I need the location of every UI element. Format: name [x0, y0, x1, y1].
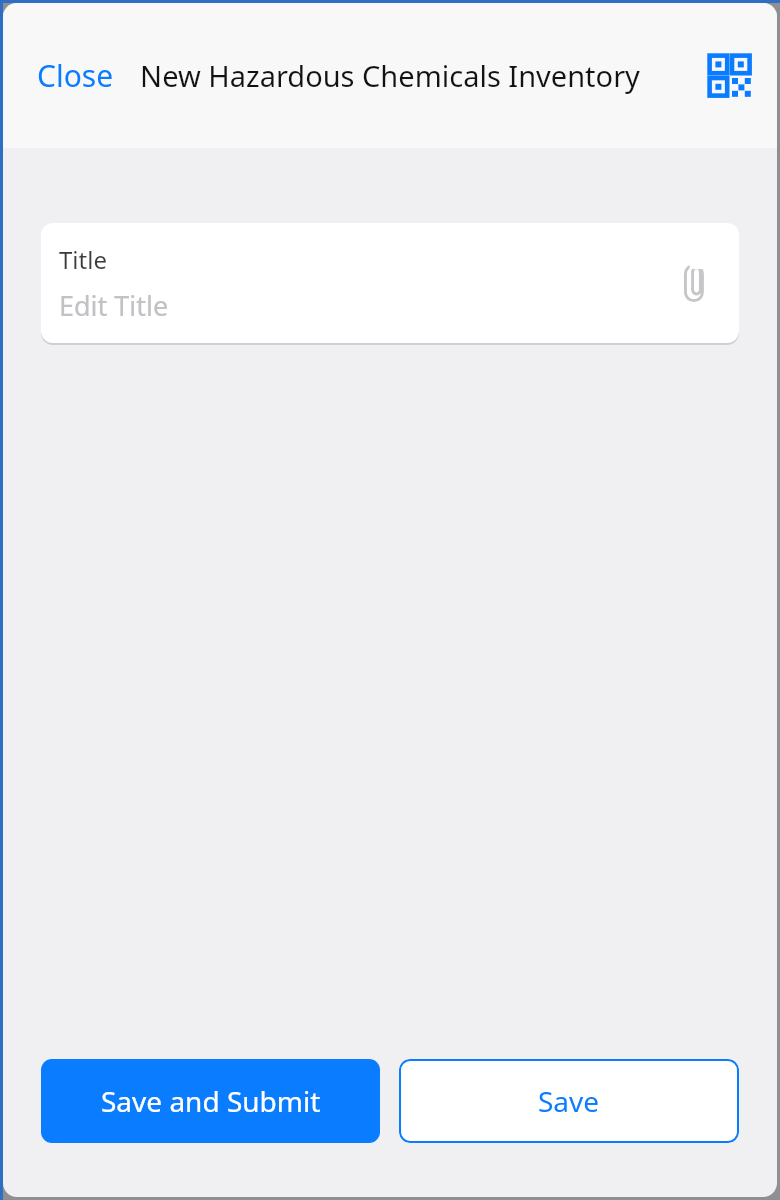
button[interactable]: Attach file — [680, 262, 714, 304]
button[interactable]: Close — [19, 43, 132, 108]
staticText: Save and Submit — [101, 1082, 321, 1120]
staticText: Save — [538, 1082, 600, 1120]
button[interactable]: Scan QR code — [699, 45, 761, 107]
staticText: Edit Title — [59, 287, 169, 324]
staticText: Title — [59, 243, 107, 276]
button[interactable]: Save — [399, 1059, 739, 1143]
button[interactable]: Save and Submit — [41, 1059, 380, 1143]
staticText: New Hazardous Chemicals Inventory — [133, 56, 647, 95]
button[interactable]: Title — [41, 223, 739, 343]
staticText: Close — [37, 55, 114, 96]
